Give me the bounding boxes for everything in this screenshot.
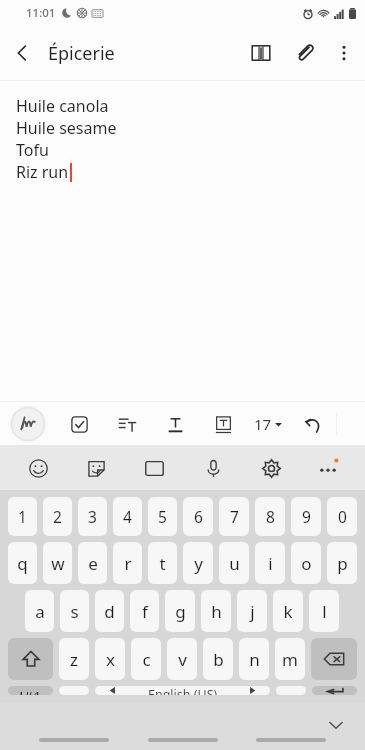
button[interactable]: 17 [252,408,284,440]
button[interactable]: Navigation [39,738,109,742]
staticText: a [35,600,45,623]
button[interactable]: Reading mode [239,31,283,75]
button[interactable]: More [313,453,343,483]
button[interactable]: Backspace [311,638,357,680]
button[interactable]: u [219,542,249,584]
button[interactable]: l [309,590,339,632]
button[interactable]: w [43,542,72,584]
button[interactable]: n [239,638,269,680]
button[interactable]: o [291,542,321,584]
button[interactable]: 1 [8,497,37,536]
button[interactable]: h [201,590,231,632]
staticText: u [229,552,240,575]
staticText: g [175,600,186,623]
staticText: n [249,648,260,671]
button[interactable]: GIF [138,452,170,484]
button[interactable]: Checklist [64,409,94,439]
button[interactable]: , [59,686,89,695]
staticText: r [124,552,132,575]
staticText: y [194,552,203,575]
button[interactable]: Stickers [80,452,112,484]
staticText: i [268,552,273,575]
staticText: f [142,600,148,623]
button[interactable]: Text box [208,409,238,439]
staticText: 3 [88,506,97,527]
button[interactable]: m [275,638,305,680]
button[interactable]: p [327,542,357,584]
button[interactable]: x [95,638,125,680]
button[interactable]: t [148,542,177,584]
button[interactable]: b [203,638,233,680]
button[interactable]: Shift [8,638,53,680]
button[interactable]: More options [327,36,361,70]
button[interactable]: j [237,590,267,632]
button[interactable]: Navigation [148,738,218,742]
button[interactable]: i [255,542,285,584]
staticText: English (US) [148,686,218,695]
button[interactable]: q [8,542,37,584]
button[interactable]: 9 [291,497,321,536]
button[interactable]: 2 [43,497,72,536]
staticText: Épicerie [48,41,115,66]
button[interactable]: English (US) [95,686,270,695]
staticText: d [104,600,115,623]
staticText: q [17,552,28,575]
button[interactable]: Enter [312,686,357,695]
staticText: 4 [123,506,132,527]
staticText: Tofu [16,139,49,161]
button[interactable]: . [276,686,306,695]
button[interactable]: f [130,590,159,632]
staticText: s [70,600,79,623]
button[interactable]: 7 [219,497,249,536]
button[interactable]: 8 [255,497,285,536]
button[interactable]: r [113,542,142,584]
button[interactable]: Voice input [197,452,229,484]
button[interactable]: d [95,590,124,632]
staticText: j [250,600,255,623]
button[interactable]: 6 [183,497,213,536]
button[interactable]: k [273,590,303,632]
staticText: e [88,552,98,575]
button[interactable]: a [25,590,54,632]
staticText: Huile sesame [16,117,117,139]
button[interactable]: z [59,638,89,680]
button[interactable]: Undo [298,409,328,439]
staticText: p [337,552,348,575]
button[interactable]: e [78,542,107,584]
button[interactable]: 0 [327,497,357,536]
staticText: w [51,552,65,575]
staticText: 17 [254,414,272,434]
staticText: o [301,552,312,575]
staticText: 0 [338,506,347,527]
button[interactable]: Text style [160,409,190,439]
staticText: Riz run [16,161,69,183]
staticText: x [106,648,115,671]
staticText: 9 [302,506,311,527]
staticText: z [70,648,78,671]
button[interactable]: Hide keyboard [325,714,347,736]
button[interactable]: 3 [78,497,107,536]
button[interactable]: y [183,542,213,584]
staticText: 8 [266,506,275,527]
button[interactable]: Attach [283,31,327,75]
button[interactable]: 5 [148,497,177,536]
staticText: h [211,600,222,623]
button[interactable]: !#1 [8,686,53,695]
button[interactable]: Navigation [256,738,326,742]
button[interactable]: v [167,638,197,680]
button[interactable]: Settings [255,452,287,484]
staticText: l [322,600,327,623]
staticText: 1 [18,506,27,527]
button[interactable]: Handwriting [10,406,46,442]
button[interactable]: c [131,638,161,680]
staticText: Huile canola [16,95,109,117]
button[interactable]: 4 [113,497,142,536]
button[interactable]: g [165,590,195,632]
button[interactable]: s [60,590,89,632]
staticText: b [213,648,224,671]
button[interactable]: Paragraph style [112,409,142,439]
button[interactable]: Back [0,31,44,75]
button[interactable]: Emoji [22,452,54,484]
